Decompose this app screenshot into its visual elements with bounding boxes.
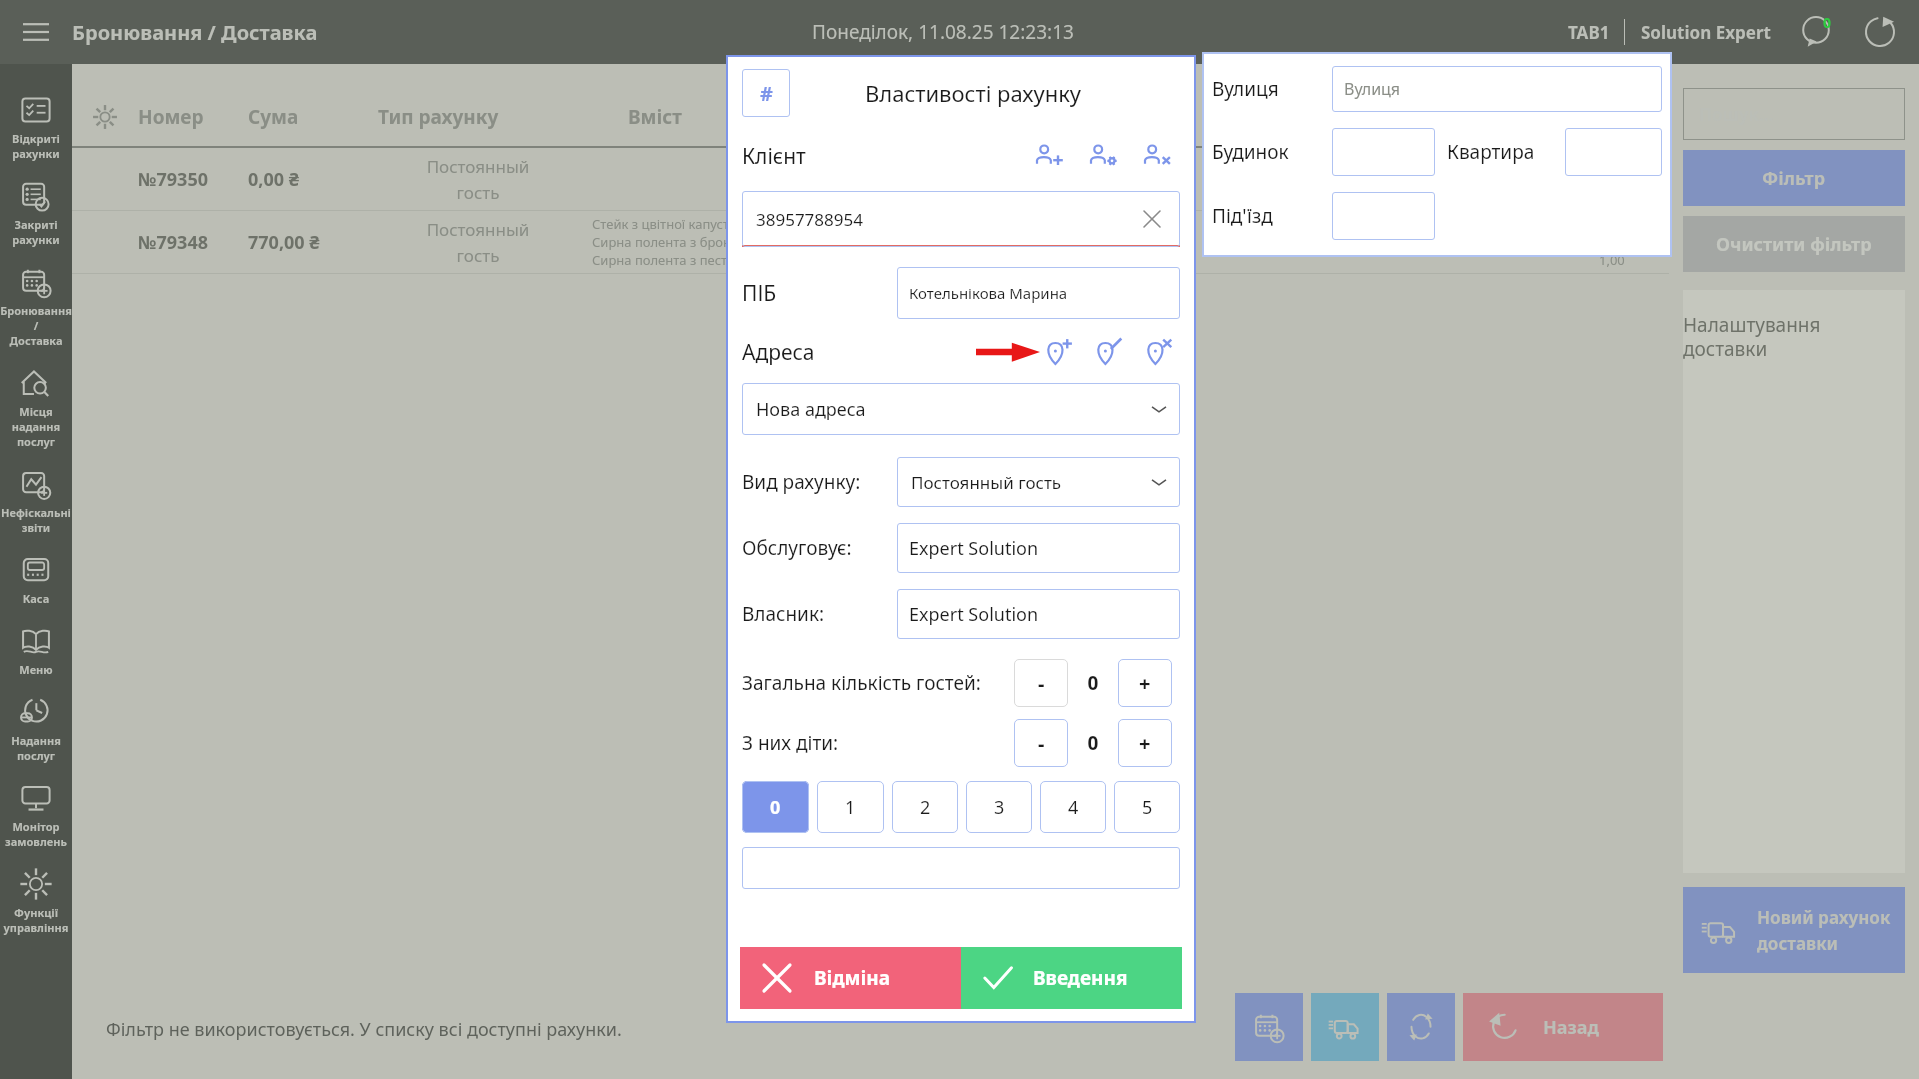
staticText: Expert Solution [909,602,1039,627]
staticText: 0,00 ₴ [248,167,378,192]
button[interactable]: Нова адреса [742,383,1180,435]
button[interactable]: Delivery [1311,993,1379,1061]
button[interactable]: Назад [1463,993,1663,1061]
button[interactable]: Закриті рахунки [0,170,72,256]
button[interactable]: №79348 [112,211,1669,273]
staticText: З них діти: [742,730,839,756]
button[interactable]: Нефіскальні звіти [0,458,72,544]
button[interactable]: Відміна [740,947,961,1009]
staticText: 5 [1142,795,1153,820]
staticText: + [1139,670,1151,697]
staticText: Відкриті рахунки [0,131,72,161]
button[interactable]: Відкриті рахунки [0,84,72,170]
button[interactable]: Очистити фільтр [1683,216,1905,272]
staticText: TAB1 [1568,21,1610,44]
staticText: Вміст [628,104,682,130]
staticText: Нефіскальні звіти [0,505,72,535]
staticText: Меню [0,662,72,677]
button[interactable]: 4 [1040,781,1106,833]
button[interactable]: 38957788954 [742,191,1180,247]
staticText: 1,00 [1599,251,1625,269]
staticText: Сума [248,104,378,130]
staticText: 2 [920,795,931,820]
other: Clear [1142,209,1162,229]
staticText: №79350 [138,167,248,192]
button[interactable]: Expert Solution [897,589,1180,639]
button[interactable]: Введення [961,947,1182,1009]
button[interactable]: Edit client [1086,139,1120,173]
button[interactable]: Add address [1042,335,1076,369]
staticText: Сирна полента з броколіні,песто та яйцем… [592,233,870,251]
staticText: Котельнікова Марина [909,283,1068,303]
button[interactable] [1565,128,1662,176]
button[interactable]: + [1118,659,1172,707]
button[interactable]: Пошук... [1683,88,1905,140]
staticText: Під'їзд [1212,203,1332,229]
button[interactable]: 2 [892,781,958,833]
staticText: Бронювання / Доставка [0,303,72,348]
staticText: Функції управління [0,905,72,935]
button[interactable]: Налаштування доставки [1683,290,1905,873]
button[interactable]: Котельнікова Марина [897,267,1180,319]
staticText: Адреса [742,338,815,367]
button[interactable]: Каса [0,544,72,615]
button[interactable] [1332,192,1435,240]
staticText: Каса [0,591,72,606]
staticText: Понеділок, 11.08.25 12:23:13 [812,19,1074,45]
button[interactable]: Вулиця [1332,66,1662,112]
button[interactable]: Menu [0,0,72,64]
staticText: Тип рахунку [378,104,628,130]
button[interactable]: Refresh [1387,993,1455,1061]
button[interactable]: Фільтр [1683,150,1905,206]
button[interactable]: 3 [966,781,1032,833]
button[interactable]: Edit address [1092,335,1126,369]
staticText: Постоянный гость [378,155,578,204]
staticText: №79348 [138,230,248,255]
button[interactable]: Messages [1793,9,1839,55]
staticText: Місця надання послуг [0,404,72,449]
button[interactable]: Новий рахунок доставки [1683,887,1905,973]
button[interactable]: Expert Solution [897,523,1180,573]
button[interactable]: # [742,69,790,117]
button[interactable]: Share [1857,9,1903,55]
staticText: Монітор замовлень [0,819,72,849]
button[interactable]: Постоянный гость [897,457,1180,507]
button[interactable]: Місця надання послуг [0,357,72,458]
staticText: Вулиця [1212,76,1332,102]
button[interactable]: New booking [1235,993,1303,1061]
staticText: 1 [845,795,856,820]
staticText: Номер [138,104,248,130]
button[interactable]: + [1118,719,1172,767]
staticText: Бронювання / Доставка [72,19,318,46]
button[interactable]: 5 [1114,781,1180,833]
button[interactable]: Delete address [1142,335,1176,369]
button[interactable]: Монітор замовлень [0,772,72,858]
button[interactable]: 0 [742,781,809,833]
staticText: Власник: [742,601,897,627]
staticText: Будинок [1212,139,1332,165]
staticText: Solution Expert [1641,21,1771,44]
staticText: 4 [1068,795,1079,820]
button[interactable]: Бронювання / Доставка [0,256,72,357]
button[interactable]: Remove client [1140,139,1174,173]
button[interactable]: Add client [1032,139,1066,173]
button[interactable]: - [1014,659,1068,707]
staticText: - [1038,730,1045,757]
button[interactable]: Надання послуг [0,686,72,772]
staticText: Новий рахунок доставки [1757,906,1891,955]
button[interactable]: Меню [0,615,72,686]
button[interactable]: - [1014,719,1068,767]
staticText: Стейк з цвітної капусти в кокосовому соу… [592,215,859,233]
staticText: Квартира [1447,139,1565,165]
staticText: Введення [1033,965,1128,991]
button[interactable]: 1 [817,781,884,833]
button[interactable] [742,847,1180,889]
button[interactable]: №79350 [112,148,1669,210]
button[interactable] [1332,128,1435,176]
button[interactable]: Функції управління [0,858,72,944]
staticText: + [1139,730,1151,757]
staticText: Фільтр [1762,166,1826,191]
staticText: Вид рахунку: [742,469,897,495]
